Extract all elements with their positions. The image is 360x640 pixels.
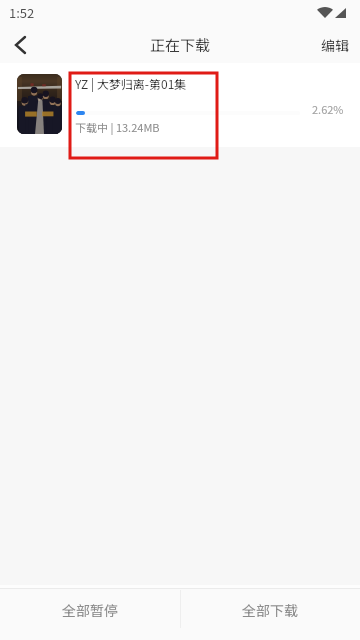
staticText: 2.62% xyxy=(312,101,344,117)
staticText: YZ | 大梦归离-第01集 xyxy=(75,75,187,92)
button[interactable]: 全部暂停 xyxy=(0,589,179,640)
button[interactable]: YZ | 大梦归离-第01集 xyxy=(0,63,360,147)
staticText: 1:52 xyxy=(9,3,35,22)
staticText: 下载中 | 13.24MB xyxy=(75,119,160,135)
staticText: 全部下载 xyxy=(242,600,298,620)
button[interactable]: 编辑 xyxy=(309,26,360,63)
staticText: 编辑 xyxy=(321,35,349,55)
button[interactable]: Back xyxy=(0,26,41,63)
staticText: 全部暂停 xyxy=(62,600,118,620)
button[interactable]: 全部下载 xyxy=(180,589,360,640)
staticText: 正在下载 xyxy=(150,34,211,56)
